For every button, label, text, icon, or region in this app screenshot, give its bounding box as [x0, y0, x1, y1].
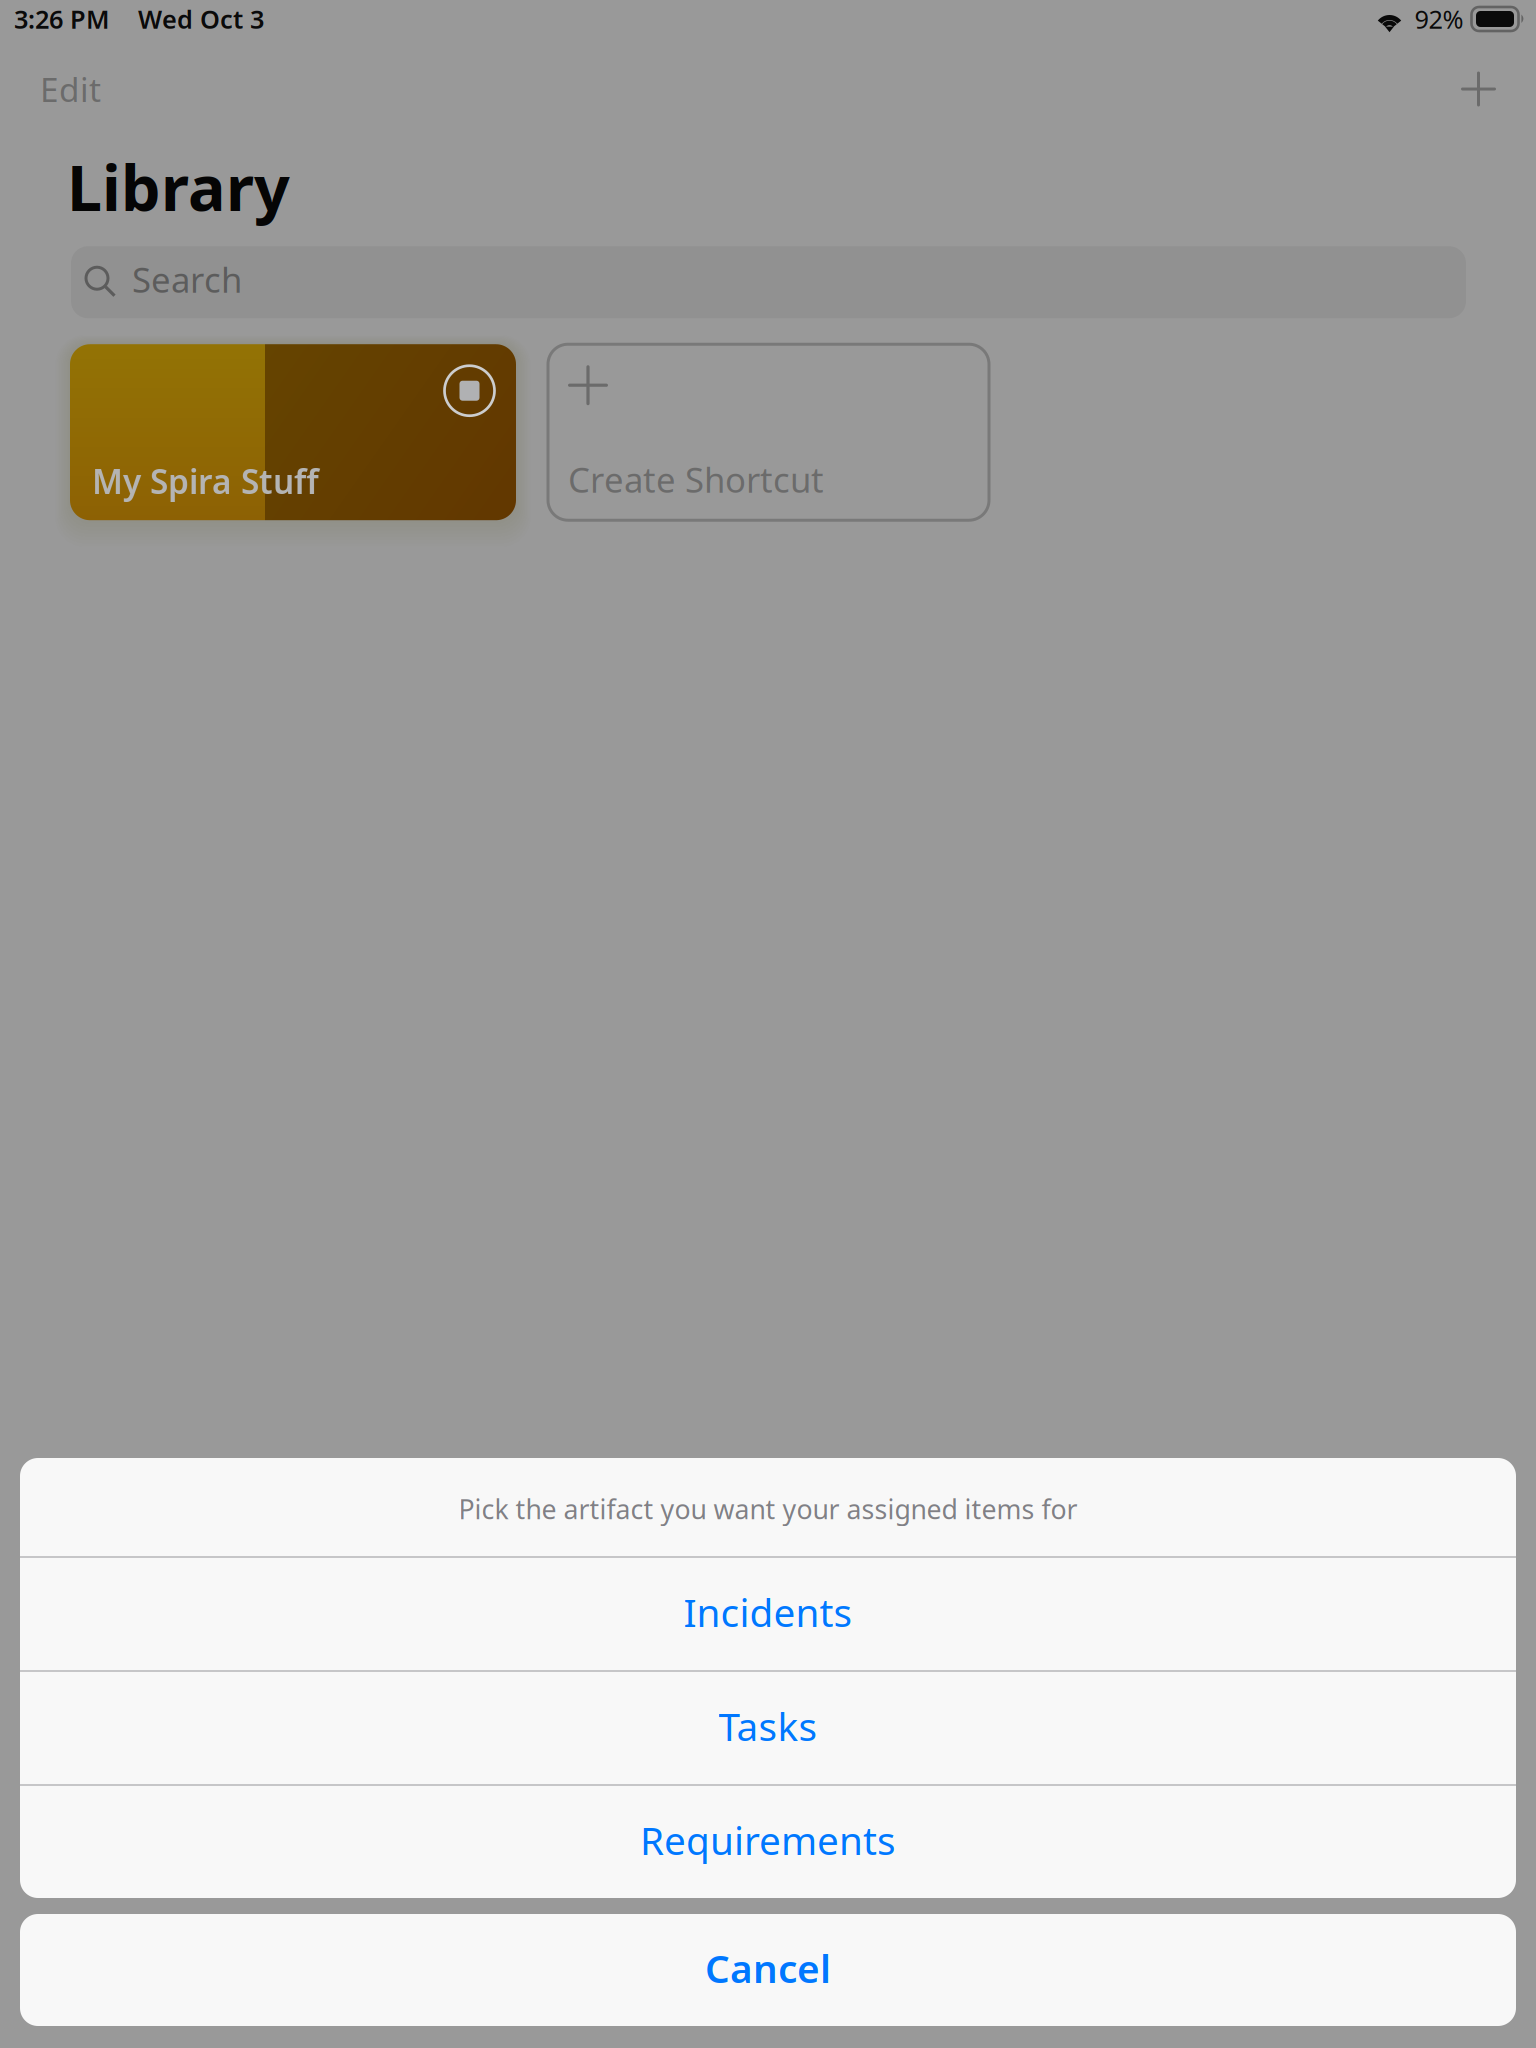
staticText: Library [67, 145, 290, 228]
button[interactable]: New Shortcut [1449, 59, 1508, 118]
staticText: Cancel [705, 1942, 831, 1994]
staticText: 92% [1414, 2, 1463, 36]
button[interactable]: Search [71, 246, 1466, 318]
staticText: Search [132, 256, 242, 302]
staticText: 3:26 PM [14, 2, 110, 36]
button[interactable]: Edit [33, 59, 114, 119]
staticText: Tasks [718, 1700, 817, 1752]
staticText: Wed Oct 3 [138, 2, 264, 36]
button[interactable]: Tasks [20, 1672, 1516, 1784]
staticText: Incidents [683, 1586, 852, 1638]
button[interactable]: My Spira Stuff [70, 344, 516, 520]
staticText: Edit [40, 67, 101, 111]
staticText: Create Shortcut [568, 456, 824, 502]
staticText: Pick the artifact you want your assigned… [458, 1491, 1077, 1527]
button[interactable]: Incidents [20, 1558, 1516, 1670]
staticText: My Spira Stuff [92, 459, 319, 503]
button[interactable]: Cancel [20, 1914, 1516, 2026]
button[interactable]: Requirements [20, 1786, 1516, 1898]
staticText: Requirements [640, 1814, 896, 1866]
button[interactable]: Create Shortcut [548, 344, 989, 520]
